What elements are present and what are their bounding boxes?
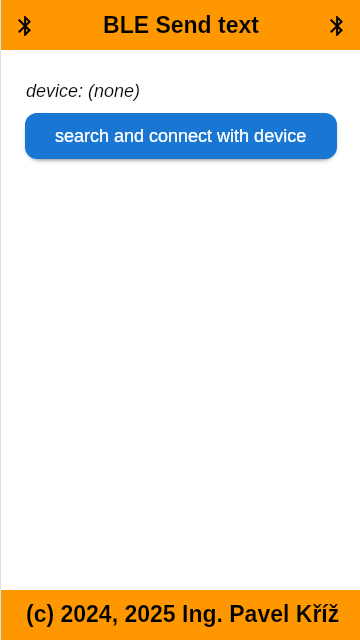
staticText: search and connect with device: [55, 126, 307, 146]
staticText: device: (none): [26, 81, 141, 101]
staticText: BLE Send text: [1, 12, 360, 38]
staticText: (c) 2024, 2025 Ing. Pavel Kříž: [26, 601, 340, 627]
button[interactable]: Bluetooth status: [11, 1, 37, 50]
button[interactable]: search and connect with device: [25, 113, 337, 159]
button[interactable]: Bluetooth settings: [323, 1, 349, 50]
